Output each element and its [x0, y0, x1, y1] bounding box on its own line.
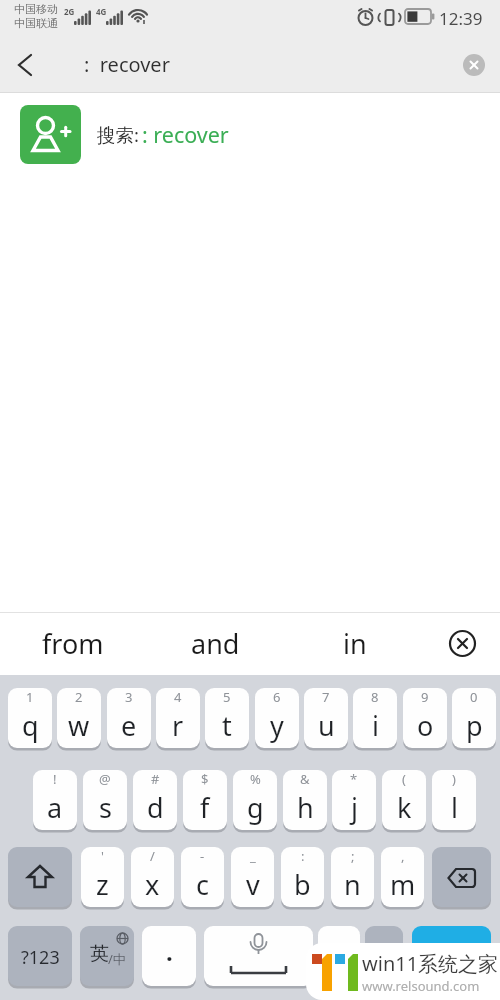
- button[interactable]: [365, 926, 403, 988]
- staticText: and: [191, 625, 240, 662]
- staticText: ': [101, 847, 104, 866]
- button[interactable]: 3: [107, 688, 151, 750]
- staticText: /中: [108, 950, 126, 968]
- staticText: 英: [90, 942, 109, 966]
- button[interactable]: [432, 847, 491, 909]
- button[interactable]: -: [181, 847, 224, 909]
- button[interactable]: [463, 54, 485, 76]
- button[interactable]: from: [0, 612, 146, 675]
- staticText: u: [318, 707, 335, 744]
- staticText: 6: [273, 688, 281, 707]
- button[interactable]: !: [33, 770, 77, 832]
- button[interactable]: [204, 926, 313, 988]
- button[interactable]: and: [146, 612, 285, 675]
- staticText: ,: [401, 847, 405, 866]
- staticText: s: [99, 789, 112, 826]
- staticText: -: [200, 847, 205, 866]
- staticText: !: [53, 770, 57, 789]
- staticText: 2: [75, 688, 83, 707]
- staticText: &: [300, 770, 310, 789]
- button[interactable]: _: [231, 847, 274, 909]
- button[interactable]: 8: [353, 688, 397, 750]
- staticText: 3: [125, 688, 133, 707]
- staticText: _: [250, 847, 256, 866]
- button[interactable]: ): [432, 770, 476, 832]
- staticText: p: [466, 707, 483, 744]
- button[interactable]: [424, 612, 500, 675]
- staticText: x: [145, 866, 160, 903]
- button[interactable]: 搜索:: [0, 93, 500, 175]
- staticText: w: [68, 707, 90, 744]
- button[interactable]: ': [81, 847, 124, 909]
- staticText: c: [196, 866, 209, 903]
- staticText: h: [297, 789, 314, 826]
- staticText: 4: [174, 688, 182, 707]
- staticText: /: [150, 847, 155, 866]
- button[interactable]: 2: [57, 688, 101, 750]
- button[interactable]: 6: [255, 688, 299, 750]
- button[interactable]: ?123: [8, 926, 72, 988]
- staticText: i: [372, 707, 379, 744]
- staticText: n: [344, 866, 361, 903]
- button[interactable]: ·: [142, 926, 196, 988]
- staticText: 0: [470, 688, 478, 707]
- button[interactable]: in: [285, 612, 424, 675]
- staticText: v: [246, 866, 260, 903]
- staticText: %: [250, 770, 261, 789]
- button[interactable]: 5: [205, 688, 249, 750]
- button[interactable]: 0: [452, 688, 496, 750]
- button[interactable]: 7: [304, 688, 348, 750]
- button[interactable]: 1: [8, 688, 52, 750]
- staticText: 8: [371, 688, 379, 707]
- button[interactable]: ;: [331, 847, 374, 909]
- button[interactable]: *: [332, 770, 376, 832]
- staticText: www.relsound.com: [362, 977, 480, 995]
- staticText: k: [397, 789, 412, 826]
- staticText: : recover: [142, 120, 229, 149]
- button[interactable]: /: [131, 847, 174, 909]
- button[interactable]: (: [382, 770, 426, 832]
- staticText: (: [402, 770, 406, 789]
- staticText: 7: [322, 688, 330, 707]
- button[interactable]: [318, 926, 360, 988]
- staticText: r: [172, 707, 184, 744]
- staticText: 中国移动: [14, 2, 58, 16]
- button[interactable]: &: [283, 770, 327, 832]
- button[interactable]: [8, 847, 72, 909]
- button[interactable]: 4: [156, 688, 200, 750]
- staticText: from: [42, 625, 104, 662]
- staticText: #: [151, 770, 160, 789]
- button[interactable]: :: [281, 847, 324, 909]
- staticText: 4G: [96, 6, 107, 17]
- staticText: j: [351, 789, 358, 826]
- staticText: 2G: [64, 6, 75, 17]
- button[interactable]: $: [183, 770, 227, 832]
- staticText: $: [201, 770, 209, 789]
- staticText: q: [22, 707, 39, 744]
- staticText: g: [247, 789, 264, 826]
- staticText: z: [96, 866, 109, 903]
- staticText: :: [301, 847, 305, 866]
- button[interactable]: 英: [80, 926, 134, 988]
- staticText: 9: [421, 688, 429, 707]
- button[interactable]: 9: [403, 688, 447, 750]
- staticText: 中国联通: [14, 16, 58, 30]
- staticText: d: [147, 789, 164, 826]
- staticText: in: [343, 625, 367, 662]
- button[interactable]: #: [133, 770, 177, 832]
- staticText: : recover: [84, 51, 170, 78]
- staticText: ;: [351, 847, 355, 866]
- staticText: *: [350, 770, 358, 789]
- button[interactable]: %: [233, 770, 277, 832]
- button[interactable]: @: [83, 770, 127, 832]
- staticText: @: [99, 770, 111, 789]
- staticText: ): [452, 770, 456, 789]
- button[interactable]: [10, 48, 44, 82]
- button[interactable]: [412, 926, 491, 988]
- staticText: t: [222, 707, 232, 744]
- staticText: a: [47, 789, 63, 826]
- staticText: m: [390, 866, 416, 903]
- staticText: l: [451, 789, 458, 826]
- staticText: e: [121, 707, 137, 744]
- button[interactable]: ,: [381, 847, 424, 909]
